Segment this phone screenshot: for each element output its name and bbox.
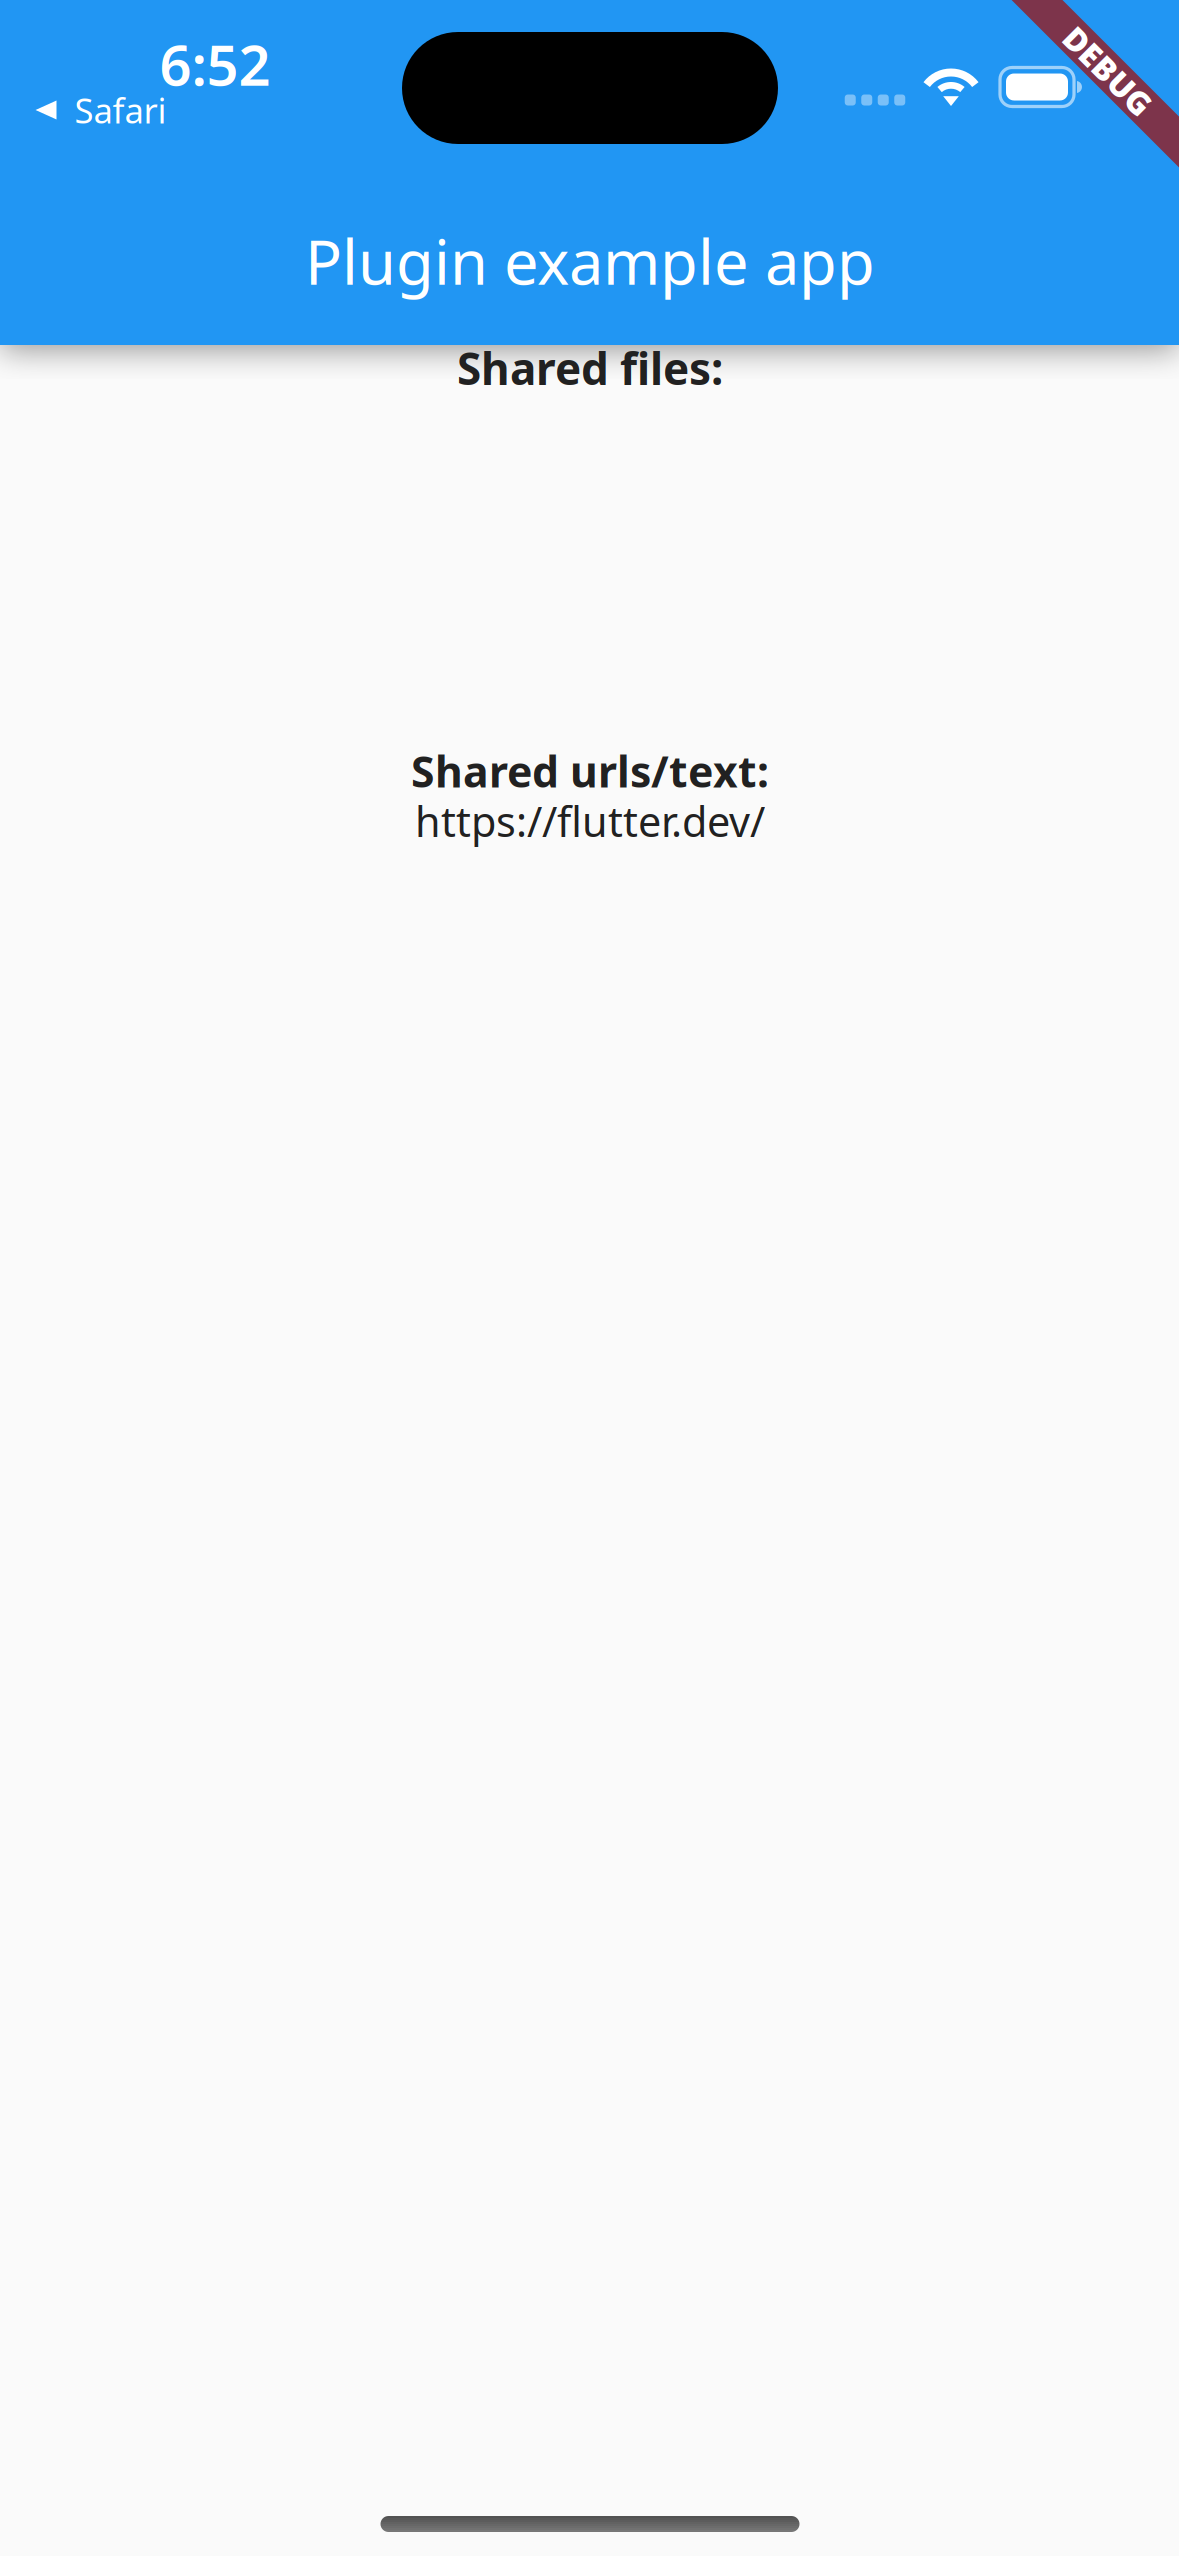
staticText: Plugin example app xyxy=(305,220,875,302)
staticText: Shared files: xyxy=(457,339,723,397)
button[interactable]: Back to Safari xyxy=(30,80,171,140)
staticText: https://flutter.dev/ xyxy=(415,794,765,848)
staticText: 6:52 xyxy=(159,27,270,101)
staticText: DEBUG xyxy=(1052,50,1163,92)
staticText: Safari xyxy=(74,87,166,133)
staticText: Shared urls/text: xyxy=(411,743,769,799)
